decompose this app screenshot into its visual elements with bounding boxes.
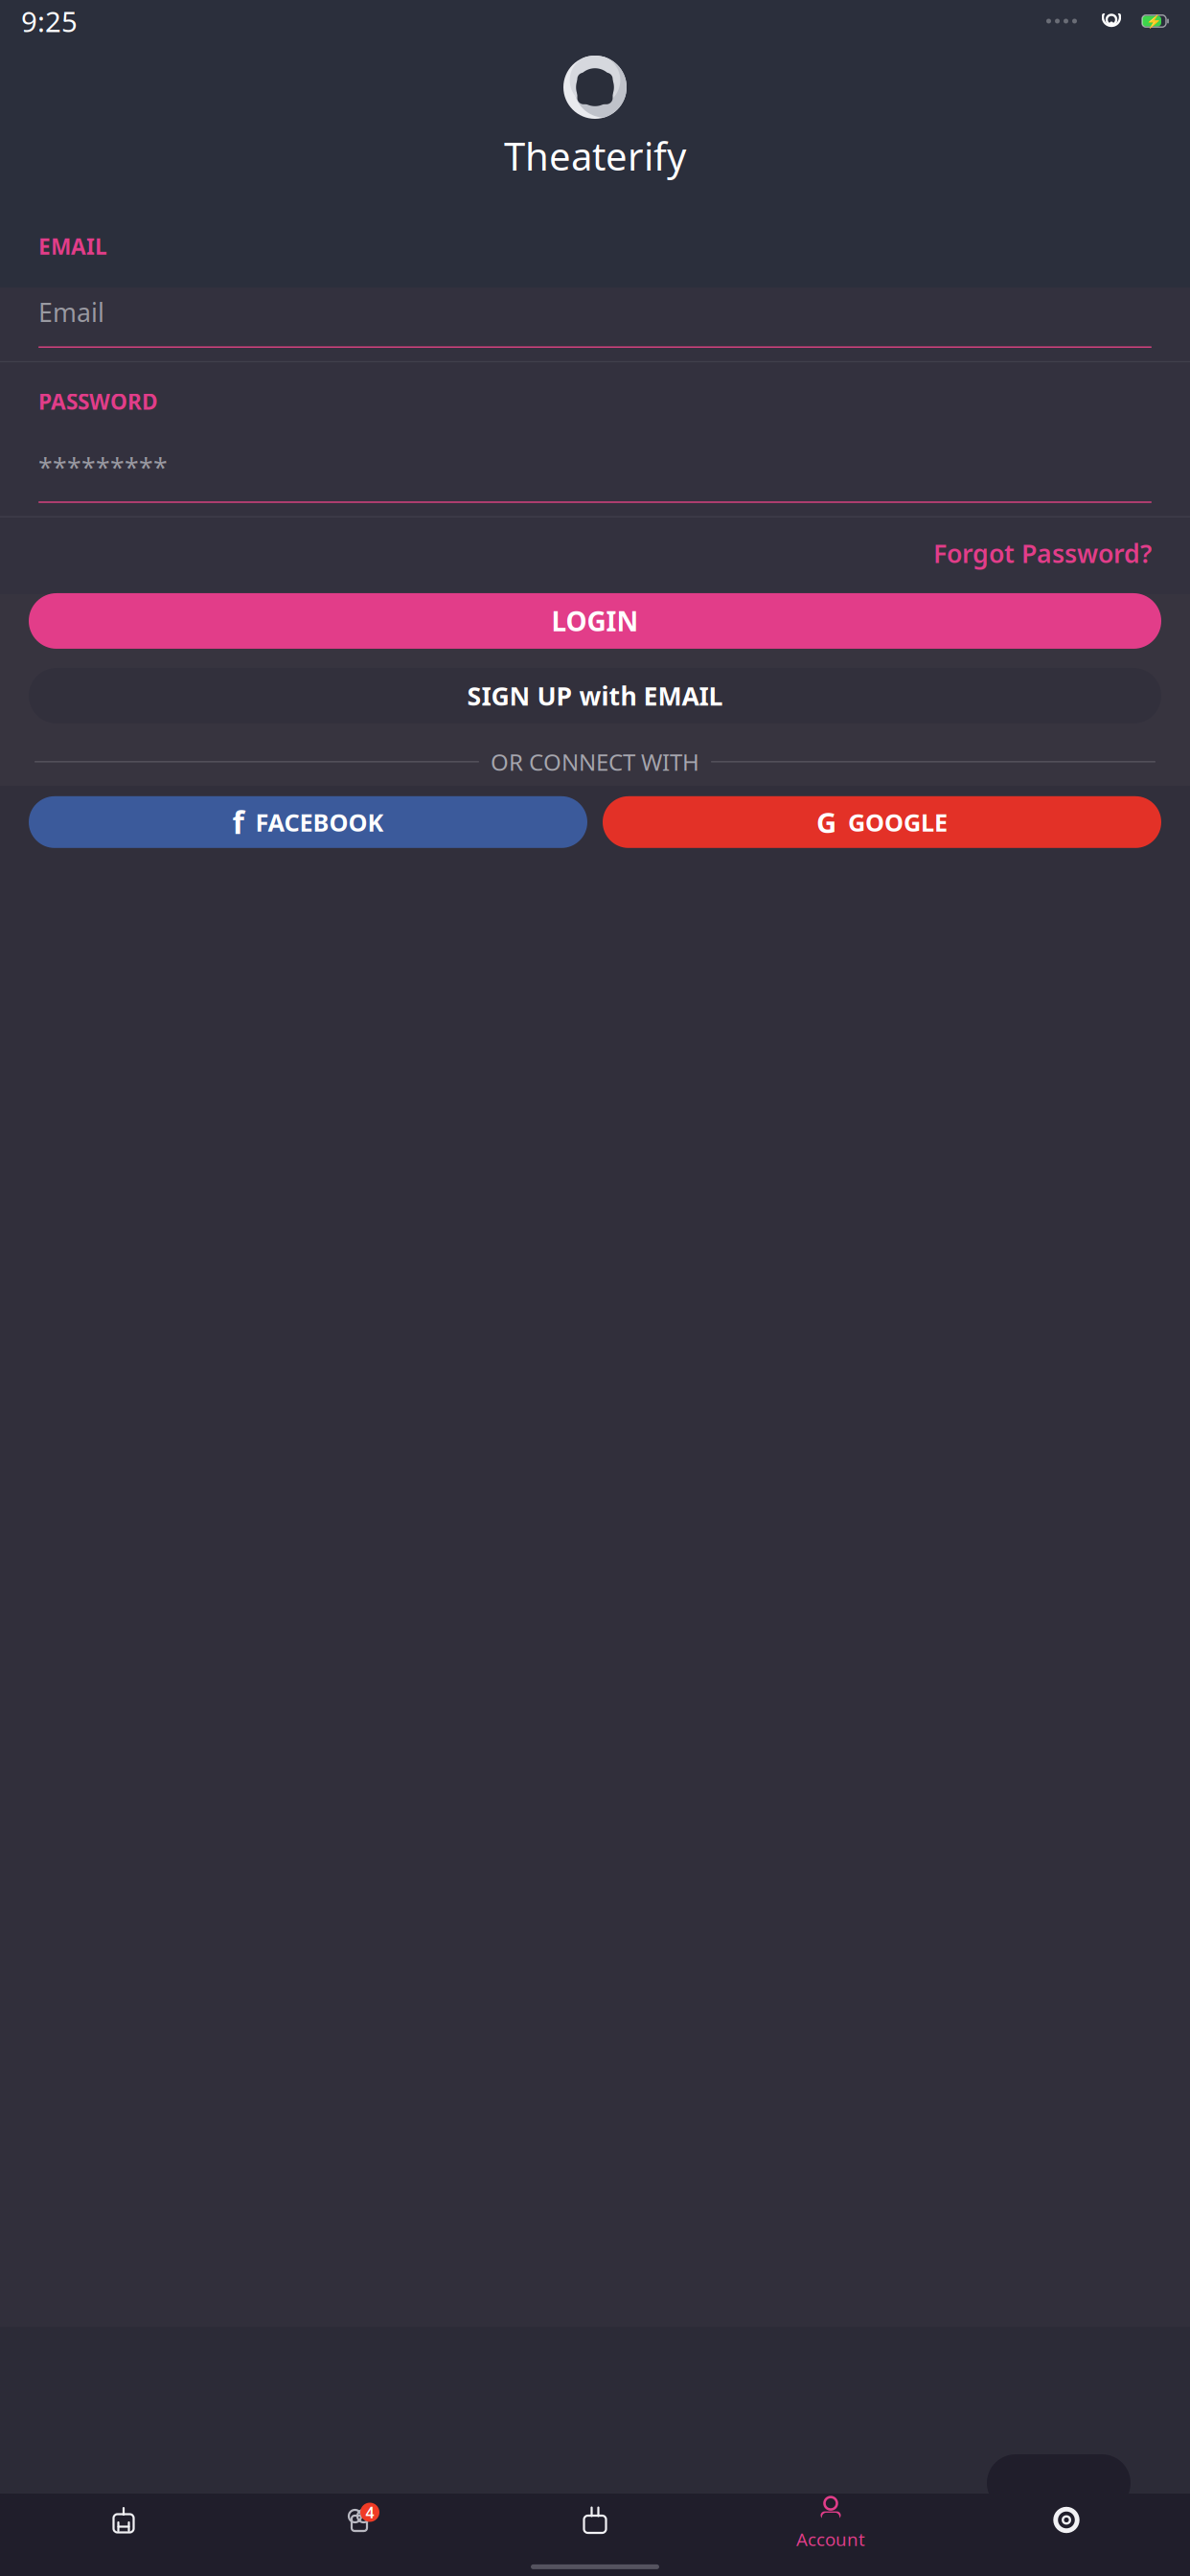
button[interactable]: SIGN UP with EMAIL <box>29 668 1161 724</box>
staticText: 9:25 <box>21 2 78 40</box>
staticText: Account <box>796 2527 865 2551</box>
staticText: EMAIL <box>38 232 107 261</box>
staticText: Forgot Password? <box>933 536 1152 570</box>
staticText: LOGIN <box>551 603 639 639</box>
staticText: Email <box>38 295 104 329</box>
button[interactable]: Favorites <box>241 2500 477 2545</box>
staticText: 4 <box>366 2502 374 2522</box>
staticText: SIGN UP with EMAIL <box>467 679 723 713</box>
button[interactable]: f <box>29 796 587 848</box>
staticText: GOOGLE <box>848 806 948 838</box>
staticText: ********* <box>38 450 168 484</box>
staticText: PASSWORD <box>38 387 158 416</box>
staticText: f <box>232 802 244 842</box>
button[interactable]: G <box>603 796 1161 848</box>
staticText: G <box>816 803 836 841</box>
staticText: OR CONNECT WITH <box>491 747 699 777</box>
button[interactable]: Settings <box>949 2500 1184 2545</box>
button[interactable]: Forgot Password? <box>933 530 1152 576</box>
staticText: Theaterify <box>504 130 686 181</box>
staticText: FACEBOOK <box>255 806 384 838</box>
button[interactable]: Account <box>713 2488 949 2557</box>
button[interactable]: LOGIN <box>29 593 1161 649</box>
staticText: ⚡ <box>1146 14 1162 28</box>
button[interactable]: Home <box>6 2500 241 2545</box>
button[interactable]: Shows <box>477 2500 713 2545</box>
